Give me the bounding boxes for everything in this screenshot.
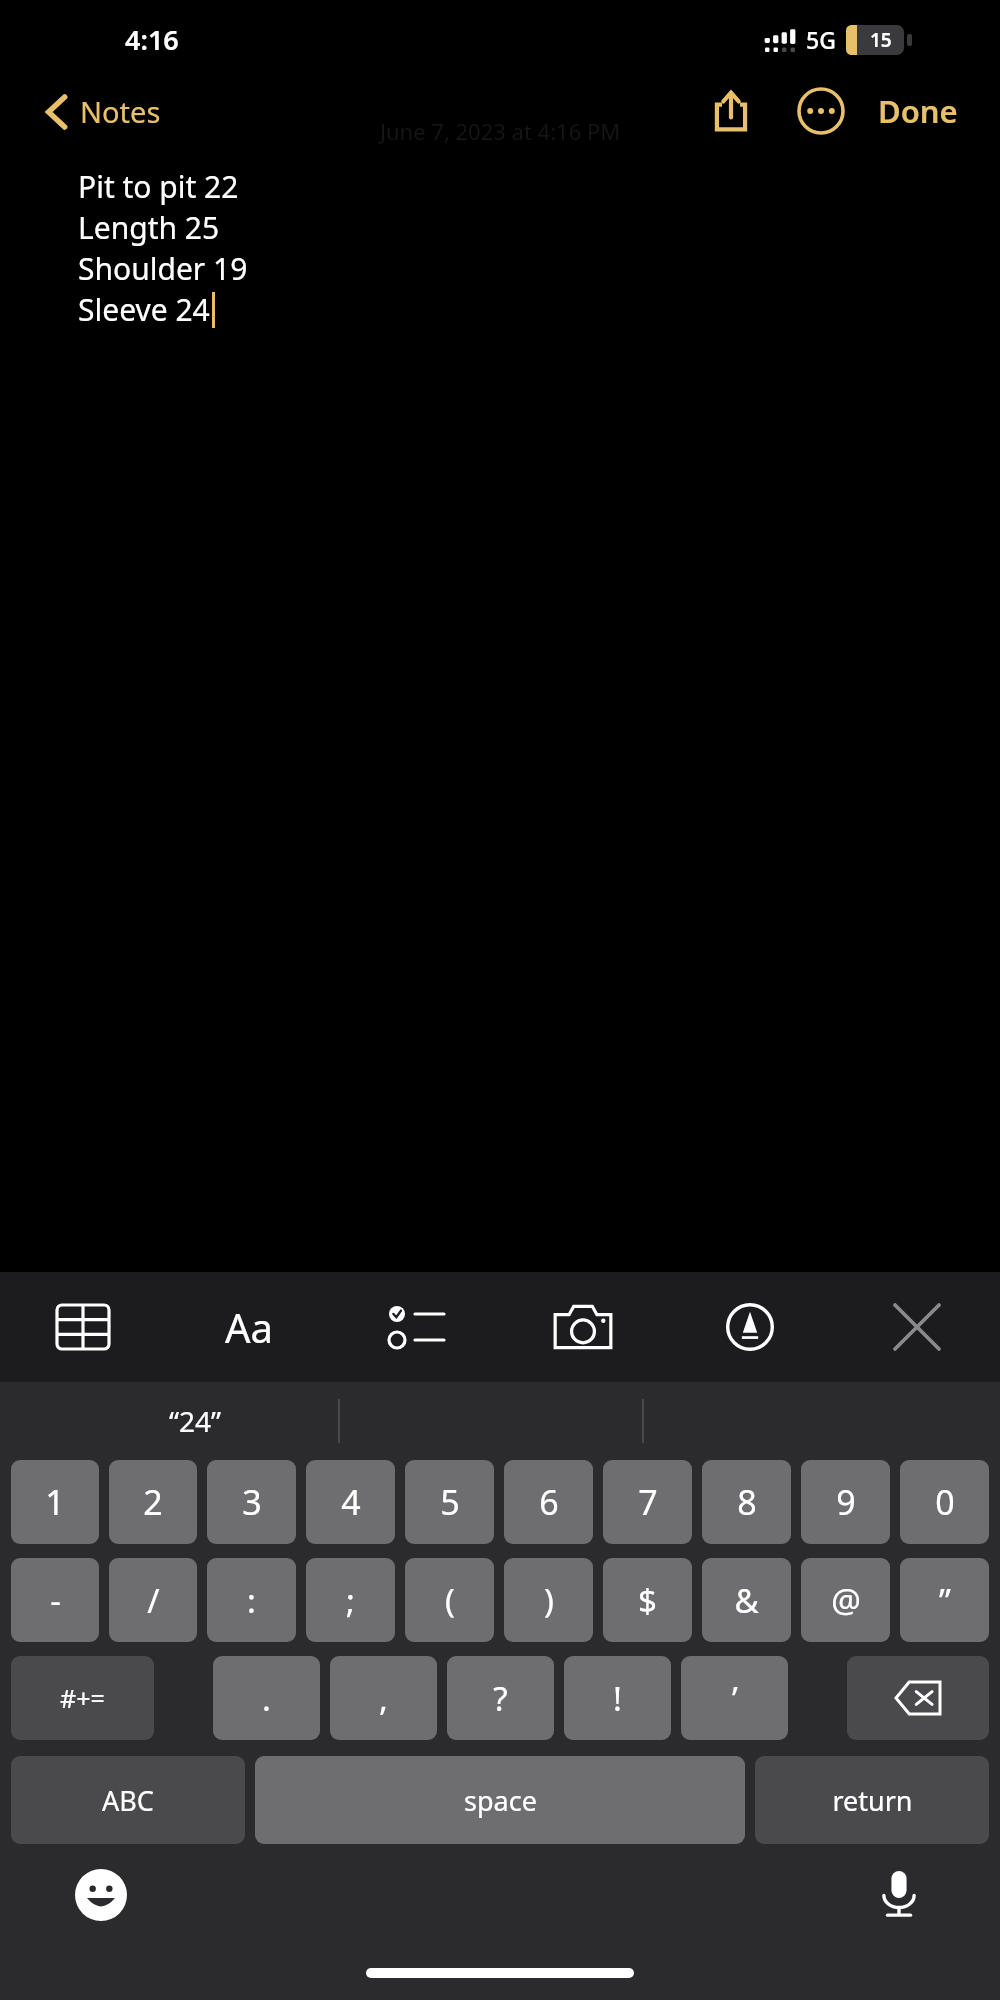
button[interactable]: - bbox=[11, 1558, 99, 1642]
button[interactable]: 0 bbox=[900, 1460, 989, 1544]
button[interactable]: 8 bbox=[702, 1460, 791, 1544]
button[interactable]: 7 bbox=[603, 1460, 692, 1544]
staticText: 4:16 bbox=[125, 21, 179, 58]
staticText: ? bbox=[493, 1676, 508, 1721]
staticText: ” bbox=[939, 1578, 951, 1623]
staticText: 2 bbox=[143, 1479, 163, 1525]
staticText: @ bbox=[831, 1578, 861, 1623]
button[interactable]: 3 bbox=[207, 1460, 296, 1544]
staticText: Pit to pit 22 bbox=[78, 166, 239, 207]
staticText: ) bbox=[544, 1578, 554, 1623]
staticText: June 7, 2023 at 4:16 PM bbox=[380, 116, 621, 146]
button[interactable]: $ bbox=[603, 1558, 692, 1642]
staticText: 3 bbox=[242, 1479, 262, 1525]
button[interactable]: & bbox=[702, 1558, 791, 1642]
staticText: , bbox=[379, 1676, 388, 1721]
staticText: & bbox=[734, 1578, 759, 1623]
staticText: Sleeve 24 bbox=[78, 289, 210, 330]
staticText: Length 25 bbox=[78, 207, 220, 248]
staticText: . bbox=[262, 1676, 271, 1721]
staticText: 0 bbox=[935, 1479, 955, 1525]
staticText: 5 bbox=[440, 1479, 460, 1525]
button[interactable]: ABC bbox=[11, 1756, 245, 1844]
staticText: 1 bbox=[45, 1479, 65, 1525]
staticText: 9 bbox=[836, 1479, 856, 1525]
button[interactable]: / bbox=[109, 1558, 197, 1642]
button[interactable]: return bbox=[755, 1756, 989, 1844]
button[interactable]: ” bbox=[900, 1558, 989, 1642]
button[interactable]: 5 bbox=[405, 1460, 494, 1544]
button[interactable]: Dictate bbox=[870, 1866, 928, 1924]
staticText: space bbox=[464, 1782, 537, 1819]
button[interactable]: “24” bbox=[169, 1402, 222, 1440]
staticText: Done bbox=[878, 90, 958, 132]
button[interactable]: Markup bbox=[666, 1272, 833, 1382]
button[interactable]: 9 bbox=[801, 1460, 890, 1544]
button[interactable]: ) bbox=[504, 1558, 593, 1642]
button[interactable]: Delete bbox=[847, 1656, 989, 1740]
button[interactable]: ! bbox=[564, 1656, 671, 1740]
staticText: return bbox=[832, 1782, 913, 1819]
button[interactable]: 6 bbox=[504, 1460, 593, 1544]
button[interactable]: Close bbox=[833, 1272, 1000, 1382]
button[interactable]: Notes bbox=[46, 92, 161, 131]
staticText: : bbox=[247, 1578, 256, 1623]
staticText: 4 bbox=[341, 1479, 361, 1525]
button[interactable]: , bbox=[330, 1656, 437, 1740]
button[interactable]: Camera bbox=[499, 1272, 666, 1382]
button[interactable]: ( bbox=[405, 1558, 494, 1642]
button[interactable]: ; bbox=[306, 1558, 395, 1642]
button[interactable]: . bbox=[213, 1656, 320, 1740]
staticText: / bbox=[147, 1578, 160, 1623]
button[interactable]: 4 bbox=[306, 1460, 395, 1544]
staticText: 8 bbox=[737, 1479, 757, 1525]
staticText: ! bbox=[613, 1676, 622, 1721]
button[interactable]: Done bbox=[872, 80, 964, 142]
staticText: - bbox=[50, 1578, 61, 1623]
button[interactable]: 2 bbox=[109, 1460, 197, 1544]
staticText: Aa bbox=[225, 1300, 273, 1354]
button[interactable]: Emoji bbox=[72, 1866, 130, 1924]
staticText: ( bbox=[445, 1578, 455, 1623]
button[interactable]: : bbox=[207, 1558, 296, 1642]
button[interactable]: Share bbox=[700, 80, 762, 142]
staticText: 6 bbox=[539, 1479, 559, 1525]
button[interactable]: space bbox=[255, 1756, 745, 1844]
staticText: 15 bbox=[870, 27, 892, 53]
button[interactable]: #+= bbox=[11, 1656, 154, 1740]
button[interactable]: Format text bbox=[166, 1272, 332, 1382]
button[interactable]: 1 bbox=[11, 1460, 99, 1544]
staticText: 7 bbox=[638, 1479, 658, 1525]
staticText: ’ bbox=[732, 1676, 738, 1721]
button[interactable]: Checklist bbox=[332, 1272, 499, 1382]
button[interactable]: @ bbox=[801, 1558, 890, 1642]
button[interactable]: More options bbox=[790, 80, 852, 142]
staticText: 5G bbox=[806, 24, 836, 55]
staticText: ; bbox=[346, 1578, 355, 1623]
staticText: Shoulder 19 bbox=[78, 248, 248, 289]
button[interactable]: ’ bbox=[681, 1656, 788, 1740]
staticText: #+= bbox=[60, 1681, 105, 1715]
staticText: Notes bbox=[80, 92, 161, 131]
staticText: $ bbox=[638, 1578, 657, 1623]
staticText: ABC bbox=[102, 1782, 154, 1819]
button[interactable]: ? bbox=[447, 1656, 554, 1740]
button[interactable]: Table bbox=[0, 1272, 166, 1382]
